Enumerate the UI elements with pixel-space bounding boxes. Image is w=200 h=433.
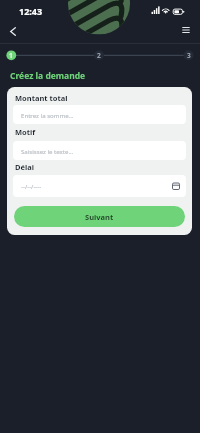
button[interactable]: Saisissez le texte... [13, 141, 186, 160]
staticText: Saisissez le texte... [21, 147, 74, 155]
button[interactable]: Suivant [14, 206, 185, 227]
button[interactable]: Menu [176, 20, 196, 40]
staticText: --/--/---- [21, 182, 42, 190]
staticText: 2 [97, 51, 101, 60]
button[interactable]: Entrez la somme... [13, 105, 186, 124]
staticText: Délai [15, 162, 34, 172]
staticText: Montant total [15, 93, 68, 103]
staticText: Suivant [85, 212, 114, 222]
staticText: 1 [9, 51, 13, 60]
staticText: 12:43 [19, 5, 43, 17]
staticText: 3 [187, 51, 191, 60]
staticText: Créez la demande [10, 70, 86, 82]
staticText: Motif [15, 127, 36, 137]
button[interactable]: Back [3, 21, 23, 41]
staticText: Entrez la somme... [21, 111, 74, 119]
button[interactable]: --/--/---- [13, 175, 186, 197]
